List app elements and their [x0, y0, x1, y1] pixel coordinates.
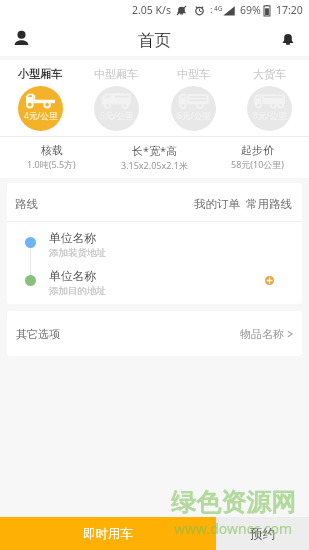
staticText: 中型厢车: [94, 67, 138, 81]
button[interactable]: 小型厢车: [4, 67, 76, 131]
staticText: :: [210, 3, 213, 15]
staticText: 58元(10公里): [231, 158, 284, 170]
button[interactable]: Add stop: [265, 276, 274, 285]
staticText: 路线: [15, 197, 38, 211]
staticText: 中型车: [177, 67, 210, 81]
staticText: 预约: [250, 526, 275, 542]
staticText: 常用路线: [246, 197, 292, 211]
staticText: 绿色资源网: [171, 487, 296, 518]
button[interactable]: 单位名称: [7, 222, 302, 260]
staticText: 起步价: [241, 143, 274, 157]
button[interactable]: 其它选项: [7, 311, 302, 356]
staticText: 核载: [41, 143, 63, 157]
staticText: 首页: [138, 30, 171, 51]
staticText: 2.05 K/s: [132, 3, 171, 17]
staticText: 6元/公里: [177, 110, 211, 122]
button[interactable]: 中型车: [157, 67, 229, 131]
button[interactable]: 预约: [216, 517, 309, 550]
button[interactable]: Profile: [8, 25, 34, 51]
staticText: 大货车: [253, 67, 286, 81]
staticText: 添加装货地址: [49, 247, 106, 259]
staticText: 添加目的地址: [49, 285, 106, 297]
staticText: www.downcc.com: [174, 519, 293, 538]
staticText: 3.15x2.05x2.1米: [121, 159, 188, 171]
staticText: 长*宽*高: [132, 143, 178, 158]
staticText: 1.0吨(5.5方): [27, 158, 76, 170]
button[interactable]: 常用路线: [243, 191, 295, 217]
staticText: 物品名称: [240, 327, 284, 341]
staticText: 单位名称: [49, 269, 97, 284]
button[interactable]: 中型厢车: [80, 67, 152, 131]
staticText: 其它选项: [16, 327, 60, 341]
button[interactable]: 我的订单: [191, 191, 243, 217]
staticText: 小型厢车: [18, 67, 62, 81]
staticText: 即时用车: [83, 526, 133, 542]
staticText: 8元/公里: [253, 110, 287, 122]
staticText: 69%: [240, 3, 261, 17]
staticText: 我的订单: [194, 197, 240, 211]
button[interactable]: 即时用车: [0, 517, 216, 550]
staticText: 17:20: [276, 3, 303, 17]
staticText: 5元/公里: [100, 110, 134, 122]
button[interactable]: Notifications: [275, 25, 301, 51]
staticText: 4元/公里: [24, 110, 58, 122]
button[interactable]: 单位名称: [7, 260, 302, 298]
staticText: 4G: [214, 4, 223, 13]
button[interactable]: 大货车: [233, 67, 305, 131]
staticText: 单位名称: [49, 231, 97, 246]
